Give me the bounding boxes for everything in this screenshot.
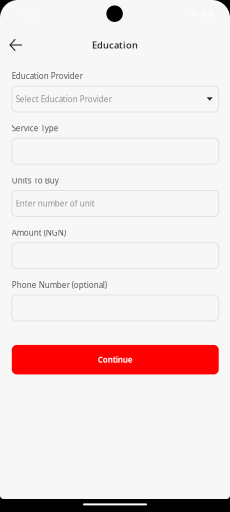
button[interactable] (12, 295, 219, 321)
staticText: Enter number of unit (16, 198, 95, 209)
staticText: Education (92, 39, 138, 51)
button[interactable] (12, 243, 219, 269)
staticText: Select Education Provider (16, 94, 112, 104)
button[interactable]: Select Education Provider (12, 86, 219, 112)
staticText: Education Provider (12, 71, 83, 81)
button[interactable] (12, 138, 219, 164)
staticText: Service Type (12, 123, 59, 133)
button[interactable]: Back (0, 33, 31, 57)
button[interactable]: Continue (12, 345, 219, 374)
staticText: Amount (NGN) (12, 227, 66, 238)
staticText: Continue (98, 354, 133, 365)
button[interactable]: Enter number of unit (12, 190, 219, 216)
staticText: Phone Number (optional) (12, 280, 107, 290)
staticText: Units To Buy (12, 175, 59, 186)
